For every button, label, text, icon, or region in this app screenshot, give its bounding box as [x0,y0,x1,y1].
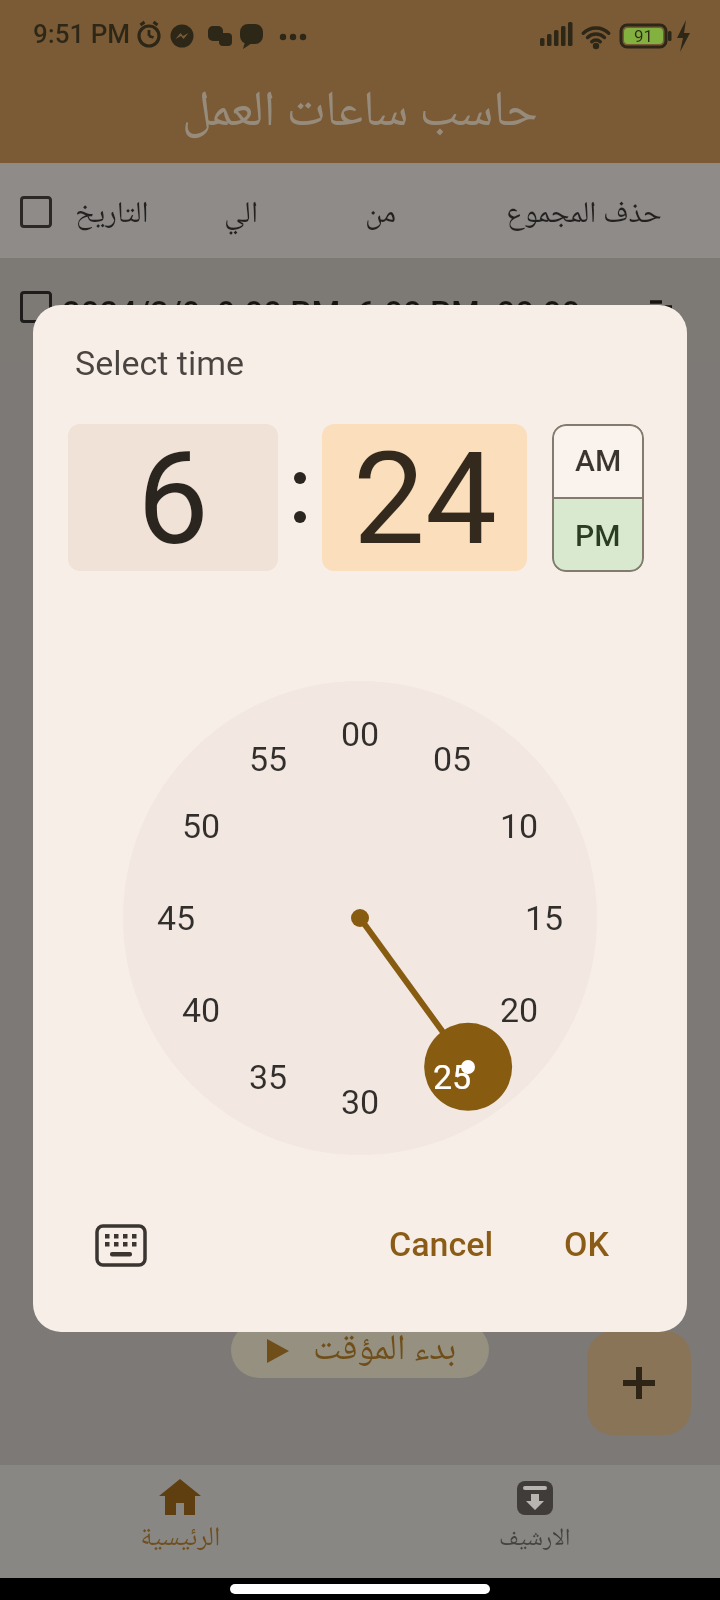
button[interactable]: 50 [161,800,241,852]
button[interactable]: 25 [412,1051,492,1103]
staticText: الي [224,194,259,235]
button[interactable]: 20 [479,984,559,1036]
staticText: 30 [341,1082,380,1122]
staticText: Select time [75,343,245,383]
button[interactable]: 6 [68,424,278,571]
button[interactable]: 40 [161,984,241,1036]
staticText: 50 [182,806,221,846]
button[interactable]: بدء المؤقت [231,1322,489,1378]
staticText: حاسب ساعات العمل [182,79,538,147]
button[interactable]: 55 [228,733,308,785]
staticText: 20 [500,990,539,1030]
staticText: Cancel [389,1224,494,1264]
button[interactable]: 24 [322,424,527,571]
button[interactable] [20,291,52,323]
staticText: 40 [182,990,221,1030]
staticText: 6 [137,424,209,571]
staticText: 10 [500,806,539,846]
button[interactable]: AM [552,424,644,497]
staticText: 00 [341,714,380,754]
staticText: من [365,194,397,235]
staticText: 91 [634,26,654,46]
staticText: PM [575,518,621,553]
button[interactable]: 45 [136,892,216,944]
staticText: الارشيف [499,1522,571,1555]
staticText: 2024/3/9 9:00 PM 6:00 PM 00:00 [62,294,581,333]
staticText: OK [564,1224,609,1264]
button[interactable] [587,1331,691,1435]
staticText: 24 [353,424,497,571]
staticText: 55 [249,739,288,779]
staticText: 25 [433,1057,472,1097]
staticText: الرئيسية [140,1520,221,1557]
staticText: التاريخ [75,194,149,235]
button[interactable]: 35 [228,1051,308,1103]
button[interactable]: 05 [412,733,492,785]
button[interactable]: الارشيف [455,1468,615,1573]
staticText: 15 [525,898,564,938]
button[interactable] [20,196,52,228]
button[interactable]: 30 [320,1076,400,1128]
button[interactable]: الرئيسية [100,1468,260,1573]
staticText: AM [575,443,622,478]
button[interactable]: Cancel [364,1214,518,1274]
button[interactable]: OK [528,1214,644,1274]
staticText: 35 [249,1057,288,1097]
staticText: 05 [433,739,472,779]
staticText: حذف المجموع [506,194,662,235]
button[interactable]: 15 [504,892,584,944]
button[interactable] [97,1226,145,1265]
button[interactable]: 00 [320,708,400,760]
button[interactable]: 10 [479,800,559,852]
staticText: 45 [157,898,196,938]
staticText: بدء المؤقت [313,1326,457,1375]
staticText: 9:51 PM [33,19,131,49]
button[interactable]: PM [552,499,644,572]
